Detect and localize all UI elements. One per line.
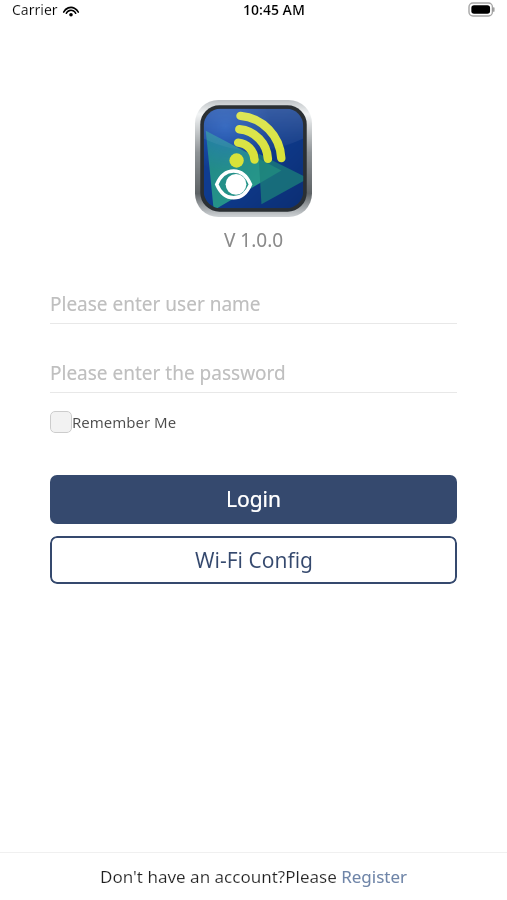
button[interactable]: Don't have an account?Please Register — [0, 853, 507, 900]
staticText: Login — [226, 485, 282, 514]
staticText: V 1.0.0 — [224, 227, 284, 253]
staticText: Carrier — [12, 0, 58, 19]
staticText: Don't have an account?Please Register — [100, 865, 408, 888]
other: Battery full — [469, 3, 495, 16]
button[interactable]: Remember Me — [50, 411, 177, 433]
staticText: 10:45 AM — [243, 0, 305, 19]
button[interactable]: Wi-Fi Config — [50, 536, 457, 584]
staticText: Please enter the password — [50, 360, 286, 386]
other: Wi-Fi signal — [63, 4, 79, 16]
button[interactable]: Please enter the password — [50, 354, 457, 393]
staticText: Please enter user name — [50, 291, 261, 317]
staticText: Wi-Fi Config — [195, 546, 313, 575]
button[interactable]: Login — [50, 475, 457, 524]
button[interactable]: Please enter user name — [50, 285, 457, 324]
staticText: Remember Me — [72, 412, 177, 432]
